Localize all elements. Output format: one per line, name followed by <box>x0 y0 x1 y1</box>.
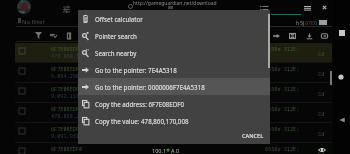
staticText: 6F7E08EDF0 <box>51 125 83 132</box>
staticText: A 0 <box>171 147 180 154</box>
other: Filter <box>35 32 42 39</box>
staticText: 6F7E08EDF0 <box>51 105 83 112</box>
staticText: 6558e 312E; <box>265 85 300 92</box>
button[interactable] <box>266 63 332 82</box>
staticText: http://gameguardian.net/download <box>133 0 217 7</box>
other: Toggle visibility <box>318 146 326 154</box>
staticText: 6558e 312E; <box>265 105 300 112</box>
other: Columns <box>67 33 71 39</box>
staticText: J <box>303 19 305 26</box>
other: Refresh <box>321 33 328 39</box>
staticText: 478,858,29 <box>51 112 83 119</box>
other: Save <box>289 33 296 39</box>
staticText: Search nearby <box>95 49 137 57</box>
button[interactable]: Pointer search <box>78 27 270 44</box>
staticText: Cd <box>318 51 325 58</box>
staticText: 6558e 312E; <box>265 145 300 152</box>
staticText: 6558e 312E; <box>265 125 300 132</box>
staticText: CANCEL <box>242 132 264 140</box>
other: Sort <box>50 33 57 38</box>
staticText: 9,091,931,2 <box>51 132 86 139</box>
staticText: Go to the pointer: 7E4A5318 <box>95 66 177 74</box>
staticText: Cd <box>318 71 325 78</box>
staticText: 6F7E08EDF0 <box>51 85 83 92</box>
staticText: Cd <box>318 111 325 118</box>
button[interactable]: Go to the pointer: 0000006F7E4A5318 <box>78 78 270 95</box>
button[interactable] <box>266 83 332 102</box>
staticText: 6558e 312E; <box>265 45 300 52</box>
other: Close <box>322 5 327 10</box>
staticText: 478,860,170 <box>51 52 86 59</box>
button[interactable] <box>15 63 78 82</box>
button[interactable] <box>266 143 332 154</box>
staticText: Go to the pointer: 0000006F7E4A5318 <box>95 83 205 91</box>
button[interactable]: Go to the pointer: 7E4A5318 <box>78 61 270 78</box>
button[interactable] <box>15 143 78 154</box>
staticText: Cd <box>318 91 325 98</box>
staticText: 6558e 312E; <box>265 65 300 72</box>
staticText: Copy the address: 6F7E08EDF0 <box>95 100 184 108</box>
staticText: Cd <box>318 151 325 154</box>
button[interactable] <box>266 123 332 142</box>
button[interactable] <box>15 103 78 122</box>
other: Settings <box>63 6 70 12</box>
staticText: 9,092,118,3 <box>51 92 86 99</box>
staticText: 0 <box>314 19 317 26</box>
staticText: 7 <box>308 19 311 26</box>
other: Go to <box>273 33 280 39</box>
staticText: 0 <box>305 19 308 26</box>
other: Back <box>339 117 345 123</box>
staticText: 100.1 <box>152 147 167 154</box>
button[interactable]: CANCEL <box>236 129 270 143</box>
button[interactable]: Search nearby <box>78 44 270 61</box>
staticText: Pointer search <box>95 32 137 40</box>
staticText: Copy the value: 478,860,170,008 <box>95 117 189 125</box>
button[interactable]: Copy the value: 478,860,170,008 <box>78 112 270 129</box>
button[interactable] <box>266 103 332 122</box>
button[interactable] <box>15 43 78 62</box>
staticText: h <box>296 19 300 26</box>
staticText: Cd <box>318 131 325 138</box>
staticText: 6F7E08EDF0 <box>51 45 83 52</box>
other: Home <box>338 74 344 80</box>
button[interactable]: Copy the address: 6F7E08EDF0 <box>78 95 270 112</box>
other: Load <box>306 33 313 39</box>
button[interactable] <box>15 123 78 142</box>
staticText: 5 <box>300 19 303 26</box>
button[interactable] <box>15 83 78 102</box>
button[interactable] <box>266 43 332 62</box>
staticText: No filter <box>22 18 45 26</box>
staticText: 6F7E08EDF0 <box>51 145 83 152</box>
staticText: 6F7E08EDF0 <box>51 65 83 72</box>
staticText: E <box>311 19 314 26</box>
staticText: Offset calculator <box>95 15 143 23</box>
button[interactable]: Offset calculator <box>78 10 270 27</box>
staticText: 9,094,290,8 <box>51 72 86 79</box>
other: Menu <box>304 6 311 10</box>
